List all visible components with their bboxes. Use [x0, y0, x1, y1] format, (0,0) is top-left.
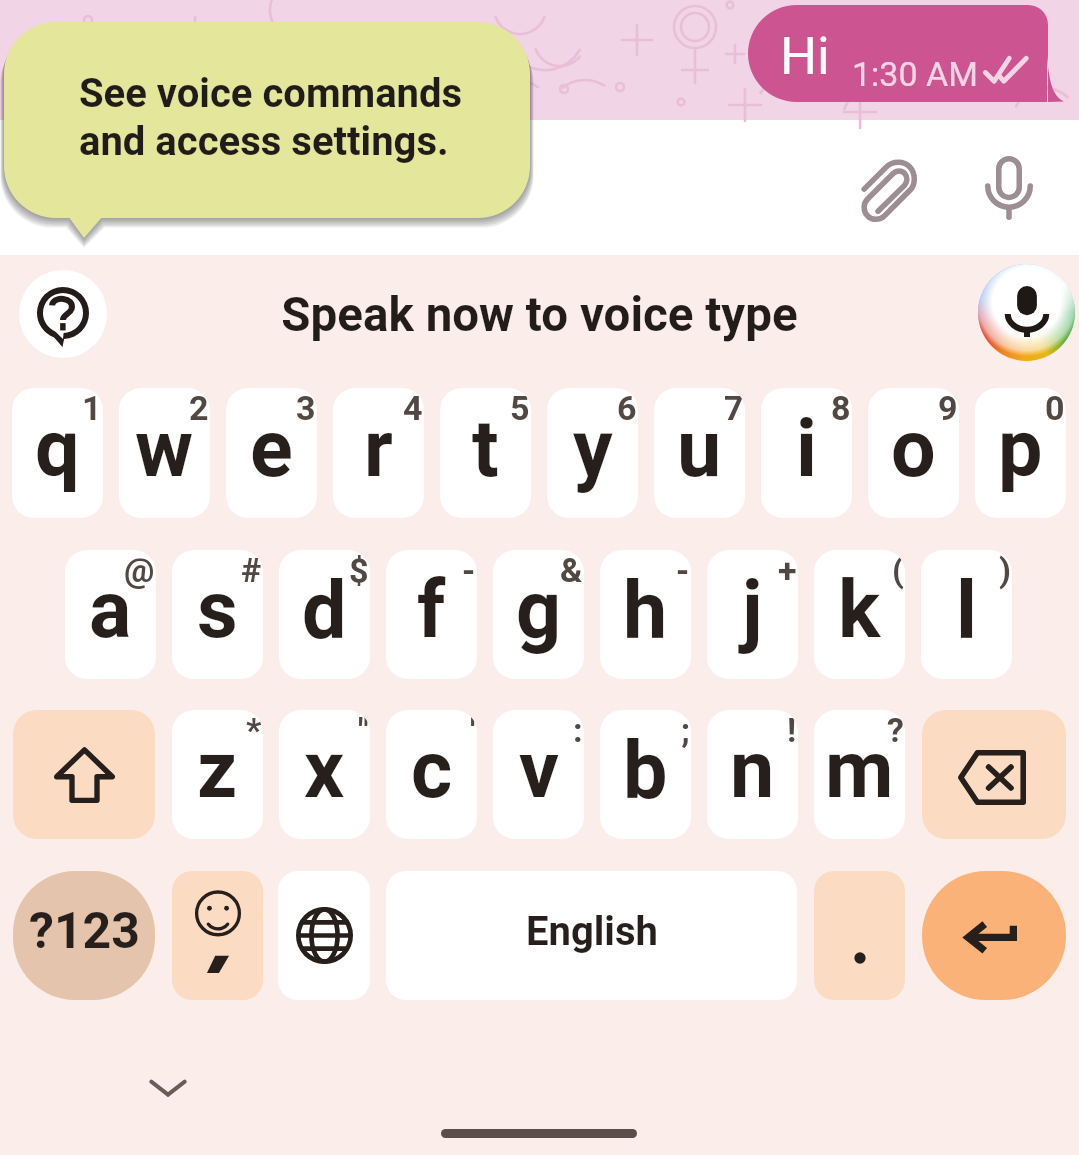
button[interactable]: English [386, 871, 797, 1000]
staticText: v [519, 724, 559, 817]
button[interactable]: Enter [922, 871, 1066, 1000]
staticText: e [250, 403, 293, 496]
staticText: 6 [617, 388, 637, 428]
button[interactable]: z [172, 710, 263, 839]
staticText: 0 [1045, 388, 1065, 428]
button[interactable]: w [119, 388, 210, 518]
button[interactable]: j [707, 550, 798, 679]
button[interactable]: y [547, 388, 638, 518]
button[interactable]: v [493, 710, 584, 839]
staticText: w [135, 403, 194, 496]
button[interactable]: Attach [845, 148, 925, 228]
staticText: See voice commands and access settings. [79, 70, 463, 165]
button[interactable]: Voice message [969, 148, 1049, 228]
staticText: 9 [938, 388, 958, 428]
button[interactable]: Emoji [22, 152, 94, 224]
button[interactable]: Stop voice typing [978, 264, 1075, 361]
staticText: English [526, 908, 658, 955]
button[interactable]: u [654, 388, 745, 518]
button[interactable]: Help [19, 270, 107, 358]
staticText: 7 [724, 388, 744, 428]
staticText: ( [892, 550, 904, 590]
staticText: - [676, 550, 690, 590]
staticText: $ [349, 550, 369, 590]
button[interactable]: Period [814, 871, 905, 1000]
staticText: q [35, 403, 80, 496]
button[interactable]: o [868, 388, 959, 518]
staticText: ; [681, 710, 690, 750]
staticText: k [838, 564, 881, 657]
staticText: 1:30 AM [852, 54, 978, 94]
staticText: h [623, 564, 668, 657]
staticText: # [241, 550, 262, 590]
staticText: y [573, 403, 613, 496]
button[interactable]: Hide keyboard [128, 1047, 208, 1127]
button[interactable]: g [493, 550, 584, 679]
staticText: t [472, 403, 499, 496]
button[interactable]: m [814, 710, 905, 839]
staticText: 2 [189, 388, 209, 428]
staticText: b [623, 724, 668, 817]
button[interactable]: s [172, 550, 263, 679]
staticText: d [302, 564, 347, 657]
button[interactable]: Backspace [922, 710, 1066, 839]
button[interactable]: n [707, 710, 798, 839]
staticText: 8 [831, 388, 851, 428]
staticText: : [573, 710, 583, 750]
staticText: 1 [82, 388, 102, 428]
staticText: n [730, 724, 775, 817]
staticText: u [677, 403, 722, 496]
button[interactable]: d [279, 550, 370, 679]
staticText: Speak now to voice type [0, 287, 1079, 343]
staticText: 3 [296, 388, 316, 428]
staticText: ' [470, 710, 476, 750]
staticText: ? [887, 710, 904, 750]
staticText: r [364, 403, 393, 496]
staticText: - [462, 550, 476, 590]
button[interactable]: i [761, 388, 852, 518]
staticText: z [197, 724, 238, 817]
staticText: x [304, 724, 345, 817]
staticText: s [197, 564, 238, 657]
button[interactable]: e [226, 388, 317, 518]
button[interactable]: b [600, 710, 691, 839]
staticText: " [358, 710, 369, 750]
staticText: ?123 [29, 902, 140, 961]
staticText: p [998, 403, 1043, 496]
button[interactable]: Emoji [172, 871, 263, 1000]
staticText: f [417, 564, 446, 657]
button[interactable]: ?123 [13, 871, 155, 1000]
staticText: o [891, 403, 936, 496]
button[interactable]: Shift [13, 710, 155, 839]
button[interactable]: c [386, 710, 477, 839]
staticText: 4 [403, 388, 423, 428]
staticText: * [246, 710, 262, 750]
staticText: j [742, 564, 763, 657]
button[interactable]: k [814, 550, 905, 679]
button[interactable]: l [921, 550, 1012, 679]
staticText: & [560, 550, 583, 590]
button[interactable]: f [386, 550, 477, 679]
staticText: c [411, 724, 453, 817]
button[interactable]: Sticker [261, 152, 333, 224]
staticText: m [825, 724, 894, 817]
button[interactable]: Change language [278, 871, 370, 1000]
staticText: Hi [780, 26, 830, 87]
staticText: 5 [510, 388, 530, 428]
button[interactable]: a [65, 550, 156, 679]
button[interactable]: p [975, 388, 1066, 518]
button[interactable]: h [600, 550, 691, 679]
staticText: a [89, 564, 132, 657]
staticText: i [796, 403, 817, 496]
staticText: + [778, 550, 797, 590]
button[interactable]: t [440, 388, 531, 518]
button[interactable]: x [279, 710, 370, 839]
button[interactable]: q [12, 388, 103, 518]
staticText: ) [999, 550, 1011, 590]
staticText: @ [124, 550, 155, 590]
staticText: l [956, 564, 977, 657]
staticText: ! [787, 710, 797, 750]
staticText: g [516, 564, 562, 657]
button[interactable]: r [333, 388, 424, 518]
